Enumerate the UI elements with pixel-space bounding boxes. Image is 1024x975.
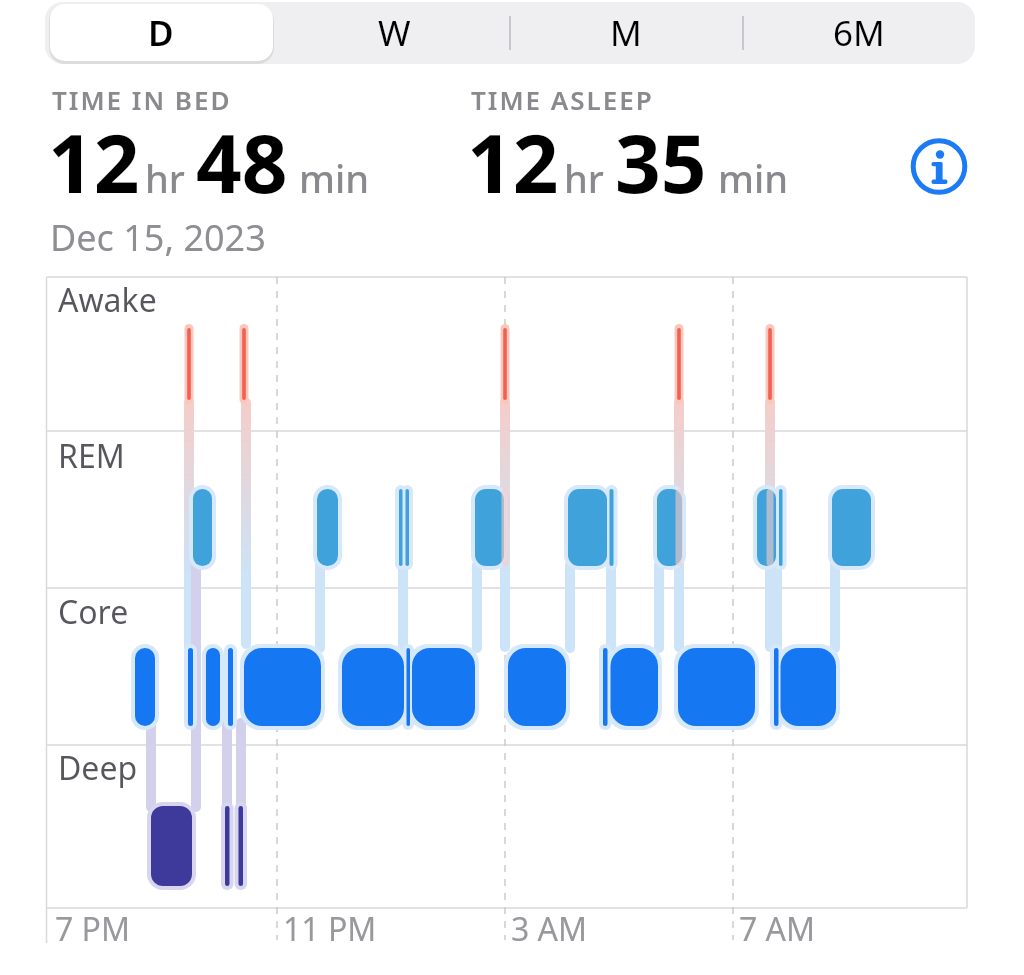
staticText: 6M: [833, 9, 885, 57]
button[interactable]: D: [45, 2, 277, 64]
staticText: M: [610, 9, 642, 57]
staticText: W: [378, 9, 411, 57]
staticText: Awake: [58, 278, 157, 322]
staticText: min: [718, 152, 789, 204]
staticText: 12: [467, 107, 559, 216]
staticText: 7 AM: [739, 907, 816, 951]
staticText: Dec 15, 2023: [50, 213, 266, 262]
staticText: 7 PM: [55, 907, 131, 951]
staticText: REM: [58, 434, 125, 478]
button[interactable]: 6M: [743, 2, 975, 64]
staticText: 11 PM: [283, 907, 377, 951]
staticText: min: [299, 152, 370, 204]
button[interactable]: [907, 134, 971, 198]
staticText: hr: [145, 152, 185, 204]
staticText: D: [148, 9, 174, 57]
button[interactable]: W: [278, 2, 510, 64]
staticText: TIME IN BED: [52, 82, 232, 117]
staticText: Core: [58, 590, 129, 634]
staticText: TIME ASLEEP: [471, 82, 654, 117]
staticText: 48: [196, 107, 288, 216]
staticText: hr: [564, 152, 604, 204]
button[interactable]: M: [510, 2, 742, 64]
staticText: 12: [48, 107, 140, 216]
staticText: 3 AM: [511, 907, 588, 951]
staticText: Deep: [58, 746, 138, 790]
staticText: 35: [615, 107, 707, 216]
